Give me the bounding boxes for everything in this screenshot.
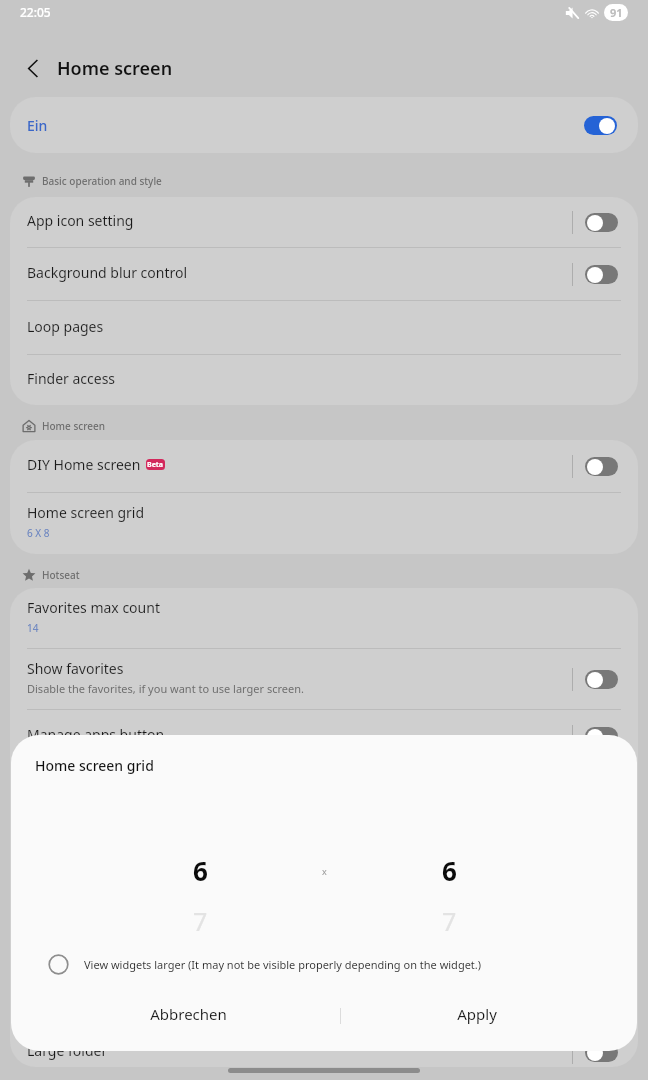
staticText: 14 [27, 621, 39, 635]
staticText: DIY Home screen [27, 455, 141, 474]
staticText: Disable the favorites, if you want to us… [27, 681, 304, 696]
staticText: Finder access [27, 369, 116, 388]
button[interactable]: Background blur control [585, 265, 618, 284]
staticText: 91 [610, 5, 623, 20]
staticText: Manage apps button [27, 725, 165, 744]
button[interactable]: App icons badges [10, 763, 638, 816]
button[interactable]: Home screen grid [10, 493, 638, 554]
staticText: 6 [193, 853, 208, 888]
staticText: Home screen grid [35, 756, 154, 775]
button[interactable]: Large folder [585, 1043, 618, 1062]
staticText: Hotseat [42, 568, 80, 582]
staticText: 6 X 8 [27, 526, 50, 540]
button[interactable]: Favorites max count [10, 588, 638, 649]
staticText: Ein [27, 116, 48, 135]
button[interactable]: App icon setting [10, 197, 638, 248]
button[interactable]: Finder access [10, 355, 638, 405]
staticText: Basic operation and style [42, 174, 162, 188]
staticText: Abbrechen [150, 1004, 227, 1024]
button[interactable]: Abbrechen [11, 988, 341, 1040]
staticText: Favorites max count [27, 598, 160, 617]
staticText: Show favorites [27, 659, 124, 678]
staticText: 6 [442, 853, 457, 888]
button[interactable]: Manage apps button [585, 727, 618, 746]
staticText: 7 [193, 904, 208, 938]
staticText: 7 [442, 904, 457, 938]
button[interactable]: Background blur control [10, 248, 638, 301]
staticText: Hide apps on Home screen [27, 937, 205, 956]
staticText: Home screen [42, 419, 105, 433]
staticText: Apply [457, 1004, 497, 1024]
staticText: Home screen grid [27, 503, 145, 522]
staticText: x [322, 865, 327, 877]
staticText: Beta [147, 460, 164, 470]
button[interactable]: Lock Home screen layout [10, 816, 638, 869]
staticText: Background blur control [27, 263, 188, 282]
button[interactable]: Loop pages [10, 301, 638, 355]
button[interactable]: View widgets larger (It may not be visib… [11, 946, 637, 982]
staticText: 22:05 [20, 4, 51, 20]
button[interactable]: Large folder [10, 1026, 638, 1067]
staticText: Loop pages [27, 317, 104, 336]
button[interactable]: 6 [140, 853, 260, 938]
staticText: App icon setting [27, 211, 134, 230]
button[interactable]: 6 [389, 853, 509, 938]
button[interactable]: Ein [10, 97, 638, 153]
button[interactable]: Back [14, 49, 52, 87]
button[interactable]: Add new apps to Home screen [10, 869, 638, 922]
button[interactable]: Apply [341, 988, 637, 1040]
staticText: Home screen [57, 56, 173, 81]
button[interactable]: DIY Home screen [10, 440, 638, 493]
button[interactable]: Hide apps on Home screen [10, 922, 638, 975]
staticText: View widgets larger (It may not be visib… [84, 957, 482, 972]
staticText: Large folder [27, 1041, 108, 1060]
button[interactable]: App icon setting [585, 213, 618, 232]
button[interactable]: Manage apps button [10, 710, 638, 763]
button[interactable]: Show favorites [10, 649, 638, 710]
button[interactable]: Show favorites [585, 670, 618, 689]
button[interactable]: Swipe down for notifications [10, 975, 638, 1028]
button[interactable]: DIY Home screen [585, 457, 618, 476]
